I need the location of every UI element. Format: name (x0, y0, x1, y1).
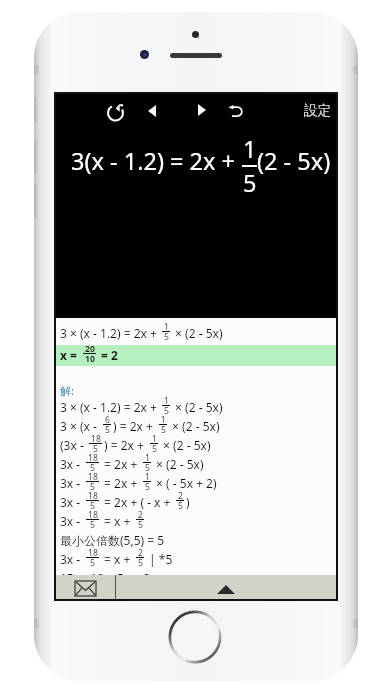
staticText: 5 (90, 462, 95, 474)
button[interactable]: 設定 (299, 96, 335, 124)
staticText: 解: (60, 383, 74, 398)
staticText: = x + (101, 551, 134, 567)
staticText: 設定 (304, 102, 331, 119)
button[interactable]: Expand (116, 575, 336, 599)
staticText: 5 (90, 557, 95, 569)
staticText: 18 (88, 547, 98, 559)
staticText: 3 × (x - 1.2) = 2x + (60, 325, 160, 341)
staticText: 18 (88, 490, 98, 502)
button[interactable]: Reload (102, 97, 128, 127)
staticText: 5 (145, 462, 150, 474)
staticText: ) (186, 494, 190, 510)
staticText: 3x - (60, 551, 84, 567)
staticText: 3 × (x - (60, 418, 101, 434)
staticText: 5 (90, 481, 95, 493)
staticText: 5 (138, 519, 143, 531)
staticText: 5 (93, 443, 98, 455)
staticText: 5 (105, 424, 110, 436)
staticText: 3x - (60, 456, 84, 472)
staticText: × (2 - 5x) (172, 399, 223, 415)
staticText: 3x - (60, 494, 84, 510)
staticText: × (2 - 5x) (160, 437, 211, 453)
staticText: (3x - (60, 437, 87, 453)
staticText: 5 (90, 500, 95, 512)
staticText: 2 (178, 490, 183, 502)
staticText: 5 (152, 443, 157, 455)
staticText: × (2 - 5x) (169, 418, 220, 434)
staticText: 3(x - 1.2) = 2x + (71, 145, 242, 177)
staticText: 18 (88, 471, 98, 483)
button[interactable]: Undo (222, 96, 248, 126)
staticText: 10 (85, 353, 95, 365)
staticText: ) = 2x + (113, 418, 157, 434)
staticText: 最小公倍数(5,5) = 5 (60, 532, 165, 548)
staticText: | *5 (146, 551, 173, 567)
staticText: 1 (164, 395, 169, 407)
staticText: 5 (145, 481, 150, 493)
staticText: 1 (145, 471, 150, 483)
staticText: = 2x + ( - x + (101, 494, 174, 510)
button[interactable]: Previous (139, 96, 165, 126)
staticText: (2 - 5x) (257, 145, 331, 177)
staticText: × (2 - 5x) (153, 456, 204, 472)
staticText: 1 (243, 133, 257, 165)
staticText: 3x - (60, 513, 84, 529)
staticText: = 2 (98, 347, 118, 363)
staticText: 1 (161, 414, 166, 426)
staticText: 5 (90, 519, 95, 531)
staticText: 3x - (60, 475, 84, 491)
staticText: × (2 - 5x) (172, 325, 223, 341)
staticText: 18 (91, 433, 101, 445)
staticText: 18 (88, 509, 98, 521)
staticText: × ( - 5x + 2) (153, 475, 217, 491)
staticText: 5 (164, 331, 169, 343)
staticText: 6 (105, 414, 110, 426)
staticText: 2 (138, 509, 143, 521)
staticText: 20 (85, 343, 95, 355)
staticText: = x + (101, 513, 134, 529)
staticText: 1 (145, 452, 150, 464)
staticText: 5 (138, 557, 143, 569)
staticText: x = (60, 347, 81, 363)
staticText: 5 (161, 424, 166, 436)
staticText: 18 (88, 452, 98, 464)
staticText: 5 (178, 500, 183, 512)
staticText: 3 × (x - 1.2) = 2x + (60, 399, 160, 415)
staticText: 5 (243, 167, 257, 199)
staticText: ) = 2x + (104, 437, 148, 453)
staticText: = 2x + (101, 456, 141, 472)
staticText: 15x - 18 = 5x + 2 (60, 570, 151, 575)
button[interactable]: Next (189, 95, 215, 125)
staticText: 5 (164, 405, 169, 417)
staticText: 1 (152, 433, 157, 445)
staticText: 2 (138, 547, 143, 559)
staticText: 1 (164, 321, 169, 333)
staticText: = 2x + (101, 475, 141, 491)
button[interactable]: Mail (56, 575, 115, 599)
